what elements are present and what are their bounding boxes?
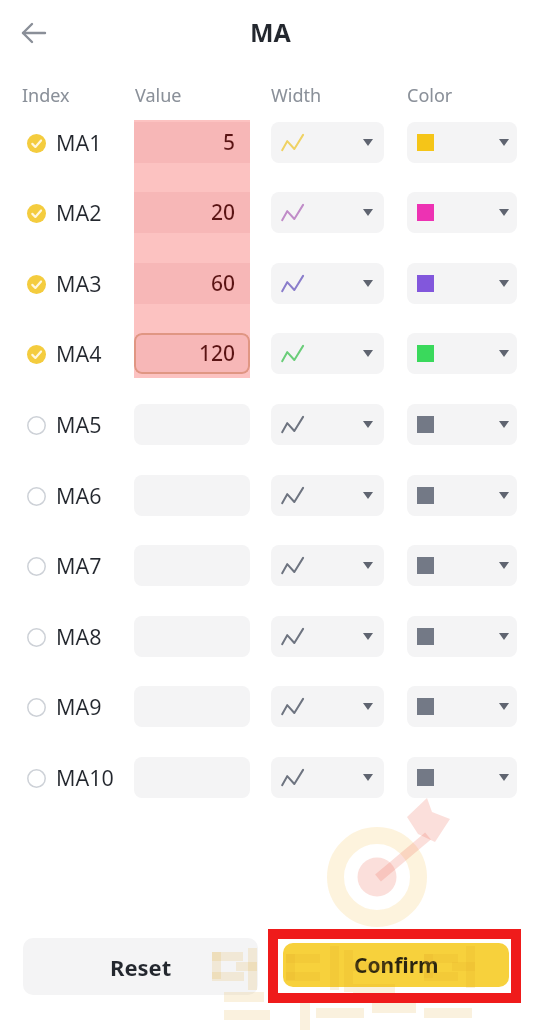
button[interactable]: Confirm (283, 943, 509, 987)
button[interactable]: Select MA10 (23, 765, 49, 791)
staticText: MA (250, 15, 291, 49)
button[interactable]: Select line width for MA8 (271, 616, 384, 657)
staticText: MA7 (56, 551, 102, 580)
button[interactable]: Select line width for MA2 (271, 192, 384, 233)
button[interactable]: Select colour for MA3 (407, 263, 517, 304)
button[interactable]: Select colour for MA7 (407, 545, 517, 586)
staticText: Width (271, 83, 322, 108)
button[interactable]: Select line width for MA5 (271, 404, 384, 445)
button[interactable]: Deselect MA4 (23, 341, 49, 367)
button[interactable]: Deselect MA3 (23, 271, 49, 297)
button[interactable]: Reset (23, 938, 258, 995)
staticText: MA9 (56, 692, 102, 721)
button[interactable]: Select line width for MA4 (271, 333, 384, 374)
staticText: MA6 (56, 481, 102, 510)
button[interactable]: 120 (134, 333, 250, 374)
staticText: MA2 (56, 198, 102, 227)
button[interactable]: Select colour for MA8 (407, 616, 517, 657)
button[interactable]: Select line width for MA3 (271, 263, 384, 304)
staticText: MA10 (56, 763, 114, 792)
staticText: 60 (211, 269, 236, 298)
staticText: Reset (110, 952, 172, 982)
button[interactable]: Select MA6 (23, 483, 49, 509)
staticText: 5 (223, 128, 236, 157)
staticText: MA4 (56, 339, 102, 368)
staticText: Value (135, 83, 182, 108)
button[interactable]: Select line width for MA9 (271, 686, 384, 727)
button[interactable]: Select colour for MA6 (407, 475, 517, 516)
button[interactable]: Select MA9 (23, 694, 49, 720)
button[interactable]: Deselect MA1 (23, 130, 49, 156)
staticText: MA8 (56, 622, 102, 651)
button[interactable]: Select MA7 (23, 553, 49, 579)
button[interactable]: Select colour for MA1 (407, 122, 517, 163)
button[interactable]: 5 (134, 122, 250, 163)
button[interactable]: Select line width for MA6 (271, 475, 384, 516)
button[interactable]: Deselect MA2 (23, 200, 49, 226)
button[interactable]: Select colour for MA5 (407, 404, 517, 445)
button[interactable]: Select line width for MA7 (271, 545, 384, 586)
staticText: MA5 (56, 410, 102, 439)
staticText: MA3 (56, 269, 102, 298)
staticText: Index (22, 83, 70, 108)
button[interactable]: 60 (134, 263, 250, 304)
staticText: 120 (199, 339, 236, 368)
button[interactable]: Select colour for MA4 (407, 333, 517, 374)
button[interactable]: Select line width for MA1 (271, 122, 384, 163)
button[interactable]: Back (14, 13, 54, 53)
button[interactable]: 20 (134, 192, 250, 233)
button[interactable]: Select MA5 (23, 412, 49, 438)
button[interactable]: Select colour for MA10 (407, 757, 517, 798)
button[interactable]: Select colour for MA9 (407, 686, 517, 727)
staticText: 20 (211, 198, 236, 227)
button[interactable]: Select colour for MA2 (407, 192, 517, 233)
button[interactable]: Select MA8 (23, 624, 49, 650)
staticText: Color (407, 83, 453, 108)
staticText: MA1 (56, 128, 102, 157)
staticText: Confirm (354, 951, 439, 980)
button[interactable]: Select line width for MA10 (271, 757, 384, 798)
